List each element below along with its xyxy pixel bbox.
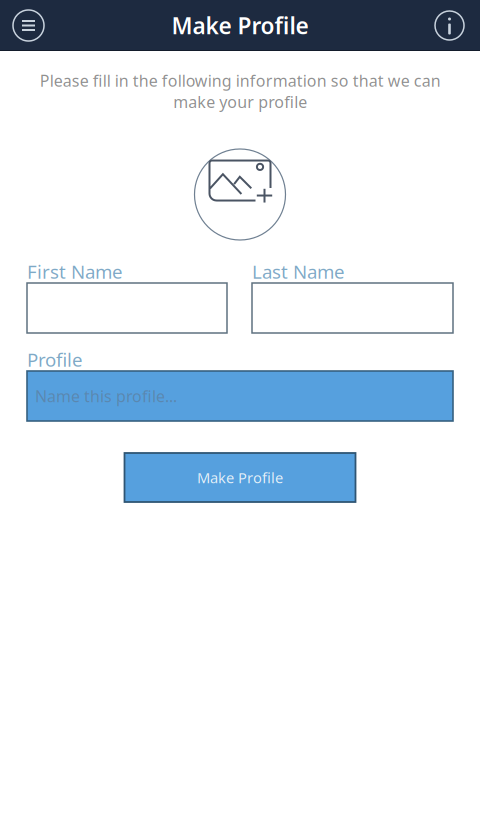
button[interactable]: Information (435, 11, 464, 40)
staticText: Please fill in the following information… (39, 70, 440, 112)
staticText: Make Profile (197, 468, 283, 487)
staticText: Last Name (252, 259, 345, 284)
button[interactable]: Add profile photo (194, 149, 285, 240)
staticText: Name this profile... (35, 385, 177, 407)
staticText: Make Profile (171, 10, 308, 40)
staticText: First Name (27, 259, 123, 284)
staticText: Profile (27, 347, 83, 372)
button[interactable]: Make Profile (124, 453, 355, 502)
button[interactable]: Menu (13, 10, 44, 41)
